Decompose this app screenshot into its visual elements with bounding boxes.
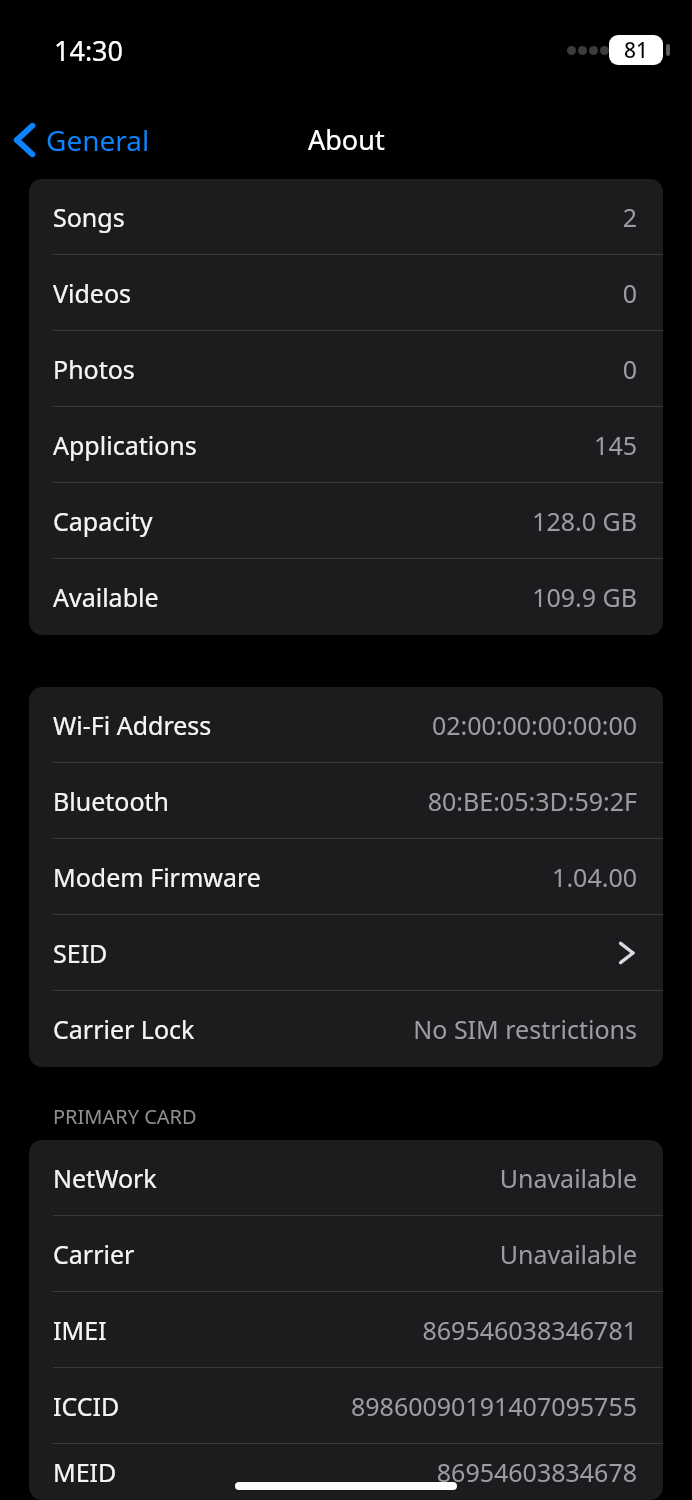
staticText: Unavailable	[499, 1161, 637, 1195]
staticText: ICCID	[53, 1389, 120, 1423]
staticText: 89860090191407095755	[350, 1389, 637, 1423]
staticText: Capacity	[53, 504, 153, 538]
staticText: Applications	[53, 428, 197, 462]
button[interactable]: Capacity	[29, 483, 663, 559]
staticText: IMEI	[53, 1313, 107, 1347]
staticText: 145	[594, 428, 637, 462]
staticText: 0	[622, 352, 637, 386]
button[interactable]: Wi-Fi Address	[29, 687, 663, 763]
staticText: 86954603834678	[436, 1455, 637, 1489]
staticText: Unavailable	[499, 1237, 637, 1271]
staticText: General	[46, 121, 150, 159]
other: Back to General	[14, 123, 36, 157]
staticText: Bluetooth	[53, 784, 170, 818]
button[interactable]: Bluetooth	[29, 763, 663, 839]
staticText: 02:00:00:00:00:00	[431, 708, 637, 742]
staticText: Carrier Lock	[53, 1012, 195, 1046]
button[interactable]: Modem Firmware	[29, 839, 663, 915]
button[interactable]: IMEI	[29, 1292, 663, 1368]
staticText: Songs	[53, 200, 125, 234]
staticText: Modem Firmware	[53, 860, 261, 894]
staticText: MEID	[53, 1455, 117, 1489]
staticText: No SIM restrictions	[413, 1012, 637, 1046]
staticText: 2	[622, 200, 637, 234]
button[interactable]: Back to General	[14, 109, 150, 171]
button[interactable]: NetWork	[29, 1140, 663, 1216]
staticText: 128.0 GB	[532, 504, 637, 538]
button[interactable]: Carrier Lock	[29, 991, 663, 1067]
staticText: Photos	[53, 352, 135, 386]
staticText: PRIMARY CARD	[53, 1103, 197, 1130]
staticText: 81	[624, 36, 649, 65]
button[interactable]: SEID	[29, 915, 663, 991]
button[interactable]: Applications	[29, 407, 663, 483]
button[interactable]: Songs	[29, 179, 663, 255]
button[interactable]: Photos	[29, 331, 663, 407]
button[interactable]: Available	[29, 559, 663, 635]
button[interactable]: Carrier	[29, 1216, 663, 1292]
staticText: 0	[622, 276, 637, 310]
staticText: Available	[53, 580, 159, 614]
button[interactable]: MEID	[29, 1444, 663, 1500]
staticText: 869546038346781	[422, 1313, 637, 1347]
staticText: 14:30	[54, 32, 124, 69]
staticText: Videos	[53, 276, 132, 310]
button[interactable]: ICCID	[29, 1368, 663, 1444]
other: SEID details	[617, 937, 637, 969]
staticText: Carrier	[53, 1237, 135, 1271]
staticText: Wi-Fi Address	[53, 708, 212, 742]
staticText: 109.9 GB	[532, 580, 637, 614]
staticText: NetWork	[53, 1161, 157, 1195]
staticText: About	[308, 121, 385, 158]
staticText: 80:BE:05:3D:59:2F	[427, 784, 637, 818]
staticText: SEID	[53, 936, 108, 970]
button[interactable]: Videos	[29, 255, 663, 331]
staticText: 1.04.00	[552, 860, 637, 894]
